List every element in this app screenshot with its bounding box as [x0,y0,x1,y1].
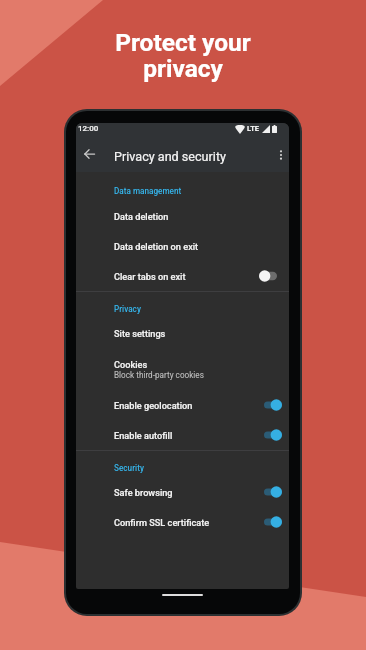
button[interactable]: Toggle off [259,269,277,283]
button[interactable]: Toggle on [264,428,282,442]
staticText: Protect your privacy [115,28,251,83]
staticText: Privacy [114,304,141,314]
staticText: Cookies [114,359,148,370]
button[interactable]: Clear tabs on exit [76,261,289,291]
staticText: Confirm SSL certificate [114,517,210,528]
staticText: Data deletion [114,211,169,222]
staticText: Security [114,463,144,473]
button[interactable]: Confirm SSL certificate [76,507,289,537]
button[interactable]: Back [76,140,102,168]
button[interactable]: Enable autofill [76,420,289,450]
staticText: Safe browsing [114,487,173,498]
staticText: Data deletion on exit [114,241,199,252]
button[interactable]: Site settings [76,318,289,348]
button[interactable]: Cookies [76,348,289,390]
button[interactable]: Toggle on [264,515,282,529]
staticText: Enable autofill [114,430,173,441]
staticText: Privacy and security [114,149,226,164]
staticText: Data management [114,186,182,196]
staticText: Clear tabs on exit [114,271,186,282]
button[interactable]: Toggle on [264,485,282,499]
staticText: Site settings [114,328,166,339]
button[interactable]: Data deletion on exit [76,231,289,261]
button[interactable]: More options [270,141,289,169]
button[interactable]: Toggle on [264,398,282,412]
staticText: Block third-party cookies [114,370,204,380]
button[interactable]: Data deletion [76,201,289,231]
staticText: 12:00 [78,124,99,133]
staticText: Enable geolocation [114,400,193,411]
button[interactable]: Enable geolocation [76,390,289,420]
button[interactable]: Safe browsing [76,477,289,507]
staticText: LTE [247,124,260,133]
